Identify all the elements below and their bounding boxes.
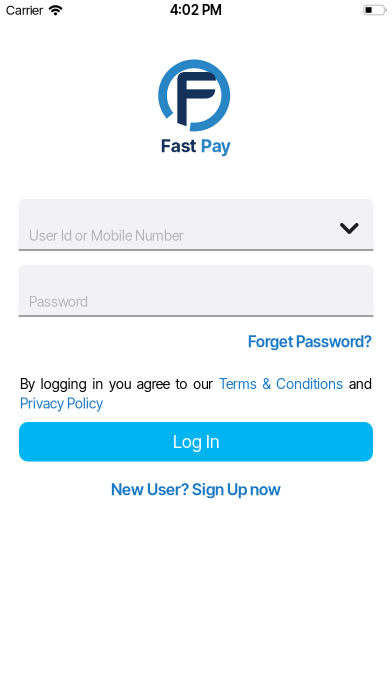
- staticText: Password: [29, 293, 88, 310]
- button[interactable]: Terms: [219, 376, 257, 392]
- staticText: agree: [137, 376, 170, 392]
- staticText: Log In: [173, 431, 219, 452]
- staticText: Pay: [201, 136, 231, 156]
- button[interactable]: Log In: [19, 422, 373, 461]
- staticText: our: [193, 376, 213, 392]
- staticText: Terms: [219, 376, 257, 392]
- button[interactable]: User Id or Mobile Number: [18, 199, 373, 251]
- staticText: Conditions: [276, 376, 343, 392]
- staticText: Fast: [161, 136, 196, 156]
- staticText: Carrier: [6, 2, 43, 18]
- button[interactable]: Forget Password?: [248, 332, 372, 351]
- staticText: and: [349, 376, 372, 392]
- staticText: you: [109, 376, 131, 392]
- button[interactable]: Privacy Policy: [20, 395, 103, 412]
- button[interactable]: &: [263, 376, 271, 392]
- button[interactable]: New User? Sign Up now: [111, 480, 281, 499]
- staticText: By: [20, 376, 35, 392]
- staticText: Forget Password?: [248, 332, 372, 351]
- button[interactable]: Password: [18, 265, 373, 317]
- staticText: to: [175, 376, 187, 392]
- staticText: &: [263, 376, 271, 392]
- staticText: logging: [41, 376, 87, 392]
- staticText: 4:02 PM: [170, 2, 222, 18]
- staticText: User Id or Mobile Number: [29, 227, 184, 244]
- staticText: in: [92, 376, 103, 392]
- staticText: Privacy Policy: [20, 395, 103, 412]
- staticText: New User? Sign Up now: [111, 480, 281, 499]
- button[interactable]: Conditions: [276, 376, 343, 392]
